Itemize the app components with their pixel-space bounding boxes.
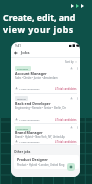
button[interactable]: Product Designer [14,155,79,169]
staticText: Create, edit, and [3,12,76,24]
staticText: 4 Total candidates [55,118,77,121]
staticText: 7 new candidates [19,140,40,143]
staticText: 7 new candidates [19,87,40,90]
button[interactable] [11,123,80,145]
staticText: view your jobs [3,24,74,36]
staticText: Sort by [65,60,74,64]
button[interactable]: Sort by [64,59,78,65]
staticText: Brand • Hybrid • New York, NY, United Ap [15,135,65,139]
button[interactable]: Views [70,67,73,70]
staticText: Sales • Onsite • Junior • Amsterdam [15,76,58,80]
button[interactable]: Views [70,97,73,100]
other: Back [14,51,18,55]
staticText: 7 new candidates [19,118,40,121]
staticText: Published [17,127,29,130]
button[interactable]: Views [70,126,73,129]
staticText: Other jobs [14,150,31,154]
staticText: Jobs [21,50,30,56]
staticText: Product • Hybrid • London, United King [17,163,65,167]
staticText: Internal [17,97,26,100]
staticText: 9:41 [15,44,21,48]
staticText: 4 Total candidates [55,140,77,143]
staticText: Account Manager [15,71,47,76]
button[interactable]: More options [76,97,79,100]
staticText: 4 Total candidates [55,87,77,90]
button[interactable]: More options [76,126,79,129]
staticText: Published [17,67,29,70]
staticText: Brand Manager [15,130,43,135]
staticText: Product Designer [17,157,48,162]
button[interactable] [11,63,80,93]
staticText: Engineering • Remote • Senior • Berlin, … [15,106,66,110]
button[interactable]: Back [14,49,42,56]
button[interactable] [11,93,80,123]
staticText: Back end Developer [15,101,51,106]
button[interactable]: More options [76,67,79,70]
button[interactable]: Create job [67,163,75,171]
